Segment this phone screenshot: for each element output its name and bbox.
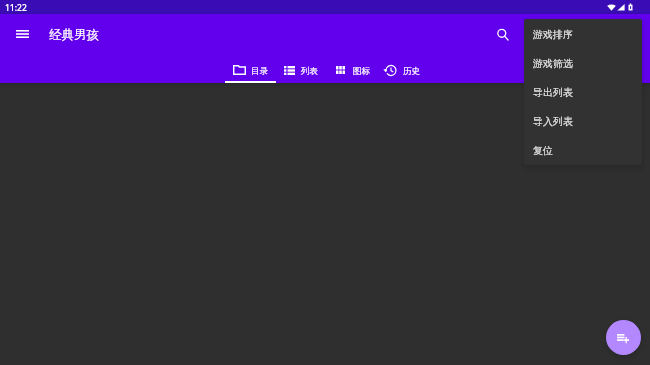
button[interactable]: 图标 — [327, 55, 378, 83]
staticText: 游戏排序 — [533, 28, 573, 41]
button[interactable]: 导入列表 — [524, 107, 642, 136]
staticText: 11:22 — [5, 2, 27, 14]
button[interactable]: 游戏排序 — [524, 20, 642, 49]
button[interactable]: 列表 — [276, 55, 327, 83]
staticText: 导入列表 — [533, 115, 573, 128]
button[interactable]: 历史 — [378, 55, 429, 83]
button[interactable]: 导出列表 — [524, 78, 642, 107]
staticText: 目录 — [251, 66, 268, 77]
button[interactable]: Search — [487, 19, 519, 51]
staticText: 历史 — [403, 66, 420, 77]
staticText: 经典男孩 — [49, 27, 99, 43]
button[interactable]: 复位 — [524, 136, 642, 165]
button[interactable]: 游戏筛选 — [524, 49, 642, 78]
staticText: 列表 — [301, 66, 318, 77]
button[interactable]: 目录 — [225, 55, 276, 83]
staticText: 游戏筛选 — [533, 57, 573, 70]
button[interactable]: Navigation menu — [6, 19, 38, 51]
staticText: 复位 — [533, 144, 553, 157]
staticText: 图标 — [353, 66, 370, 77]
staticText: 导出列表 — [533, 86, 573, 99]
button[interactable]: Add to playlist — [606, 320, 641, 355]
